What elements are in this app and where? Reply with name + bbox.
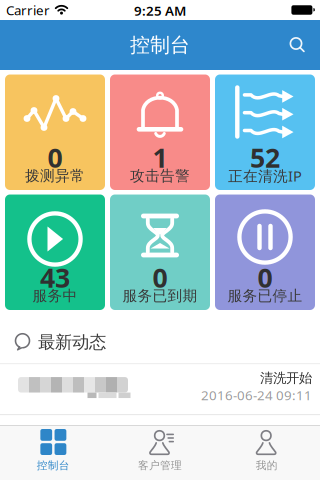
button[interactable]: 0 [215,194,315,310]
staticText: 1 [152,140,167,175]
staticText: Carrier [6,1,50,19]
staticText: 客户管理 [138,459,182,472]
button[interactable]: 0 [5,74,105,190]
button[interactable]: 1 [110,74,210,190]
button[interactable]: 43 [5,194,105,310]
staticText: 我的 [256,459,278,472]
staticText: 0 [47,140,62,175]
staticText: 2016-06-24 09:11 [201,386,312,404]
staticText: 0 [152,260,167,295]
staticText: 9:25 AM [134,2,186,19]
staticText: 服务已到期 [122,287,197,305]
staticText: 43 [40,260,70,295]
staticText: 服务已停止 [227,287,302,305]
staticText: 0 [257,260,272,295]
button[interactable]: 52 [215,74,315,190]
staticText: 清洗开始 [260,370,312,386]
staticText: 52 [250,140,280,175]
button[interactable]: 我的 [213,426,320,480]
staticText: 最新动态 [38,332,106,353]
staticText: 控制台 [37,459,70,472]
button[interactable]: Search [277,24,317,64]
staticText: 正在清洗IP [228,166,302,186]
button[interactable]: 客户管理 [107,426,213,480]
staticText: 攻击告警 [130,167,190,185]
button[interactable]: 0 [110,194,210,310]
staticText: 拨测异常 [25,167,85,185]
staticText: 控制台 [130,33,190,57]
button[interactable] [0,364,320,414]
staticText: 服务中 [32,287,77,305]
button[interactable] [0,426,107,480]
